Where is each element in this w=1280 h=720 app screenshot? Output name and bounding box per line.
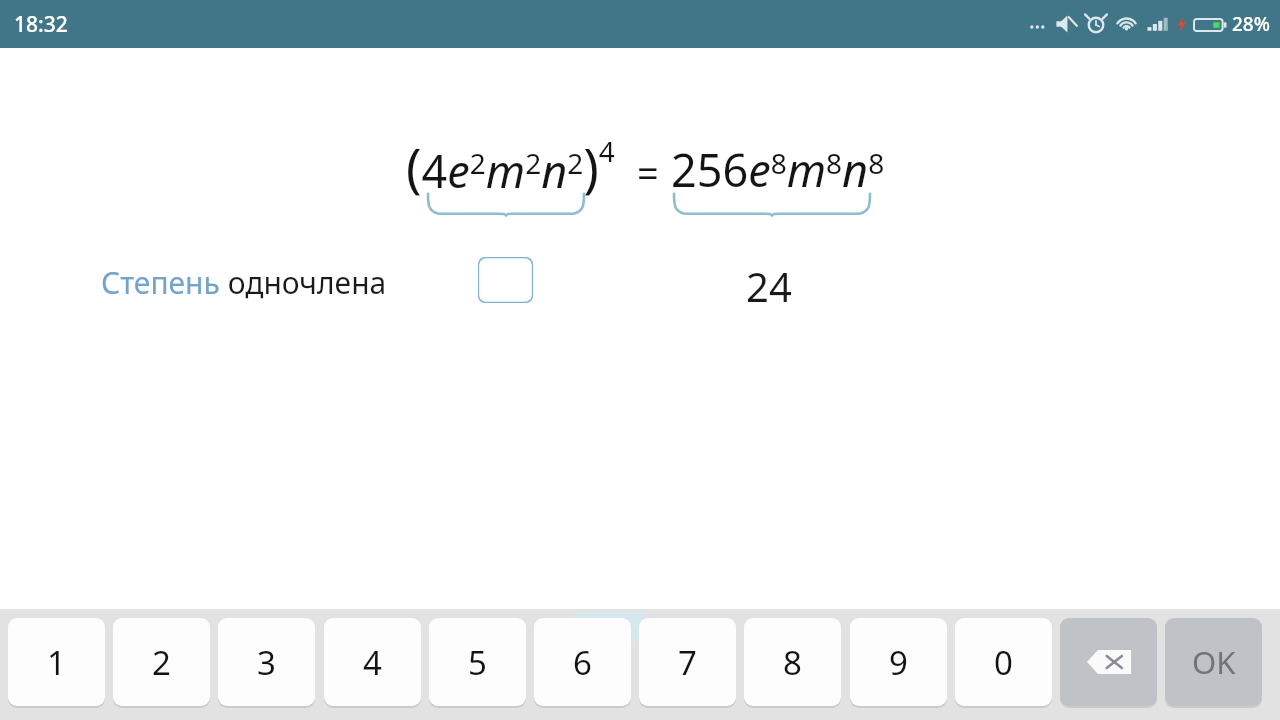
button[interactable]: 2 [113, 618, 210, 706]
staticText: Степень одночлена [101, 262, 387, 303]
staticText: 28% [1232, 11, 1270, 37]
staticText: 0 [994, 640, 1013, 685]
button[interactable]: 8 [744, 618, 841, 706]
button[interactable]: 5 [429, 618, 526, 706]
staticText: 24 [746, 259, 792, 313]
staticText: 9 [889, 640, 908, 685]
button[interactable]: 0 [955, 618, 1052, 706]
staticText: 4 [363, 640, 382, 685]
staticText: 3 [257, 640, 276, 685]
button[interactable]: 9 [850, 618, 947, 706]
button[interactable]: OK [1165, 618, 1262, 706]
button[interactable]: 3 [218, 618, 315, 706]
staticText: 7 [678, 640, 697, 685]
staticText: 6 [573, 640, 592, 685]
button[interactable]: 1 [8, 618, 105, 706]
staticText: 18:32 [14, 10, 68, 39]
button[interactable]: 4 [324, 618, 421, 706]
staticText: 5 [468, 640, 487, 685]
staticText: (4e2m2n2)4 [406, 131, 615, 202]
button[interactable]: Введите степень одночлена [478, 257, 533, 303]
staticText: 256e8m8n8 [671, 139, 885, 200]
staticText: 1 [47, 640, 66, 685]
staticText: 2 [152, 640, 171, 685]
button[interactable]: 6 [534, 618, 631, 706]
staticText: = [637, 146, 659, 198]
staticText: OK [1192, 641, 1236, 683]
staticText: 8 [783, 640, 802, 685]
button[interactable]: 7 [639, 618, 736, 706]
button[interactable]: Удалить [1060, 618, 1157, 706]
